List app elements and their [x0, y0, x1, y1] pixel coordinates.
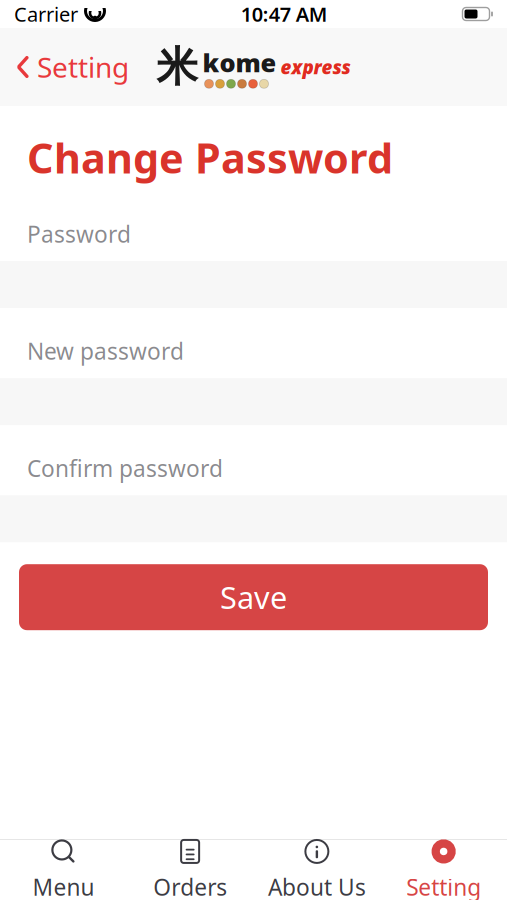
staticText: express: [280, 54, 350, 79]
staticText: New password: [27, 336, 184, 366]
staticText: About Us: [268, 872, 366, 900]
staticText: kome: [202, 46, 276, 79]
button[interactable]: Save: [19, 564, 488, 630]
staticText: Confirm password: [27, 453, 223, 483]
button[interactable]: Setting: [0, 38, 129, 96]
staticText: 10:47 AM: [241, 1, 328, 27]
button[interactable]: Setting: [380, 832, 507, 900]
staticText: Carrier: [14, 1, 78, 27]
staticText: Password: [27, 219, 131, 249]
staticText: Setting: [37, 48, 129, 86]
staticText: Setting: [406, 872, 481, 900]
staticText: Change Password: [27, 130, 393, 185]
button[interactable]: Orders: [127, 832, 254, 900]
staticText: Orders: [153, 872, 227, 900]
staticText: 米: [156, 42, 197, 92]
staticText: Menu: [32, 872, 94, 900]
button[interactable]: About Us: [253, 832, 380, 900]
button[interactable]: Menu: [0, 832, 127, 900]
staticText: Save: [220, 577, 287, 617]
